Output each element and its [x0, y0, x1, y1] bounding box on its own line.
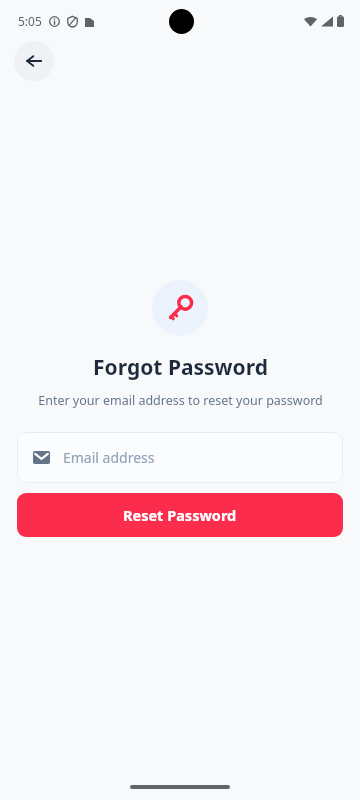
staticText: Forgot Password — [93, 353, 268, 382]
button[interactable]: Reset Password — [17, 493, 343, 537]
button[interactable]: Email address — [17, 432, 343, 483]
staticText: 5:05 — [18, 13, 42, 29]
staticText: Enter your email address to reset your p… — [38, 392, 323, 409]
button[interactable]: Back — [14, 41, 54, 81]
staticText: Email address — [63, 448, 155, 467]
staticText: Reset Password — [123, 505, 237, 525]
